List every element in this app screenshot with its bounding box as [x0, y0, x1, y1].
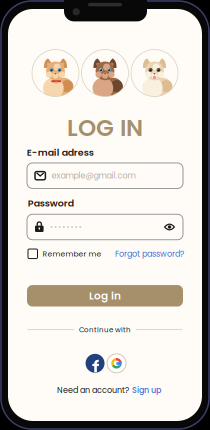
staticText: Sign up	[132, 385, 161, 396]
staticText: Password	[28, 197, 74, 210]
staticText: Log in	[89, 288, 121, 303]
button[interactable]: Continue with Facebook	[85, 354, 104, 373]
staticText: Remember me	[42, 248, 101, 259]
button[interactable]: Sign up	[132, 385, 161, 396]
button[interactable]: Log in	[27, 285, 183, 307]
staticText: Forgot password?	[115, 248, 184, 259]
button[interactable]: Continue with Google	[107, 354, 126, 373]
staticText: example@gmail.com	[51, 170, 135, 181]
staticText: LOG IN	[67, 112, 143, 144]
staticText: Continue with	[79, 325, 131, 335]
staticText: Need an account?	[57, 385, 129, 396]
staticText: E-mail adress	[27, 146, 94, 159]
